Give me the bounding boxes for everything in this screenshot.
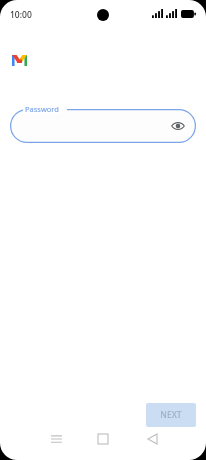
button[interactable]: Show password xyxy=(169,117,187,135)
button[interactable]: Show password xyxy=(10,109,196,143)
button[interactable]: Recent apps xyxy=(43,426,69,452)
staticText: 10:00 xyxy=(10,9,32,21)
button[interactable]: Home xyxy=(90,426,116,452)
button[interactable]: Back xyxy=(139,426,165,452)
button[interactable]: NEXT xyxy=(146,403,196,427)
staticText: Password xyxy=(25,104,59,114)
staticText: NEXT xyxy=(160,409,182,421)
